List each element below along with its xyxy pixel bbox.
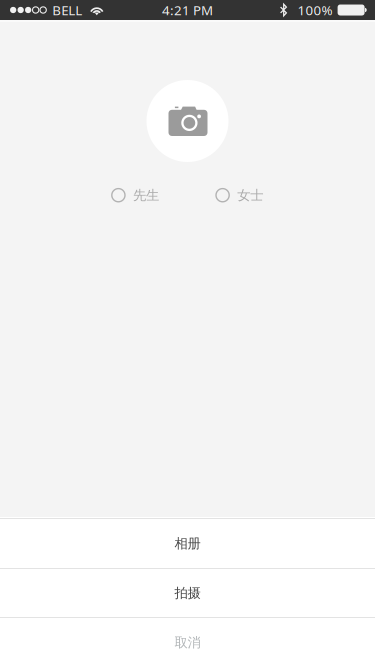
button[interactable]: 相册 [0, 519, 375, 568]
button[interactable]: 女士 [216, 182, 263, 208]
staticText: 相册 [174, 535, 200, 552]
button[interactable]: Choose photo [146, 80, 228, 162]
staticText: 拍摄 [174, 585, 200, 601]
staticText: 100% [298, 1, 333, 19]
button[interactable]: 拍摄 [0, 569, 375, 617]
staticText: 取消 [174, 634, 200, 651]
staticText: BELL [52, 1, 82, 19]
staticText: 女士 [237, 187, 263, 203]
button[interactable]: 先生 [112, 182, 159, 208]
staticText: 4:21 PM [162, 1, 213, 19]
button[interactable]: 取消 [0, 618, 375, 667]
staticText: 先生 [133, 187, 159, 203]
